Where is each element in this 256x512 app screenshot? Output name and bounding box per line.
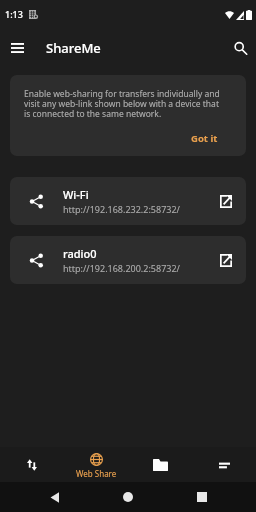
button[interactable]: Web Share — [64, 447, 128, 482]
button[interactable]: Back — [38, 482, 70, 512]
button[interactable]: Open link in browser — [205, 236, 246, 284]
staticText: http://192.168.200.2:58732/ — [63, 262, 180, 274]
button[interactable]: Send and receive — [0, 447, 64, 482]
button[interactable]: Files — [128, 447, 192, 482]
button[interactable]: More options — [192, 447, 256, 482]
staticText: Wi-Fi — [63, 187, 89, 202]
staticText: http://192.168.232.2:58732/ — [63, 203, 180, 215]
button[interactable]: radio0 — [10, 236, 246, 284]
staticText: ShareMe — [46, 39, 101, 57]
staticText: Enable web-sharing for transfers individ… — [24, 88, 224, 120]
staticText: Got it — [191, 132, 218, 145]
staticText: radio0 — [63, 246, 97, 261]
staticText: 1:13 — [5, 8, 23, 20]
button[interactable]: Wi-Fi — [10, 177, 246, 225]
button[interactable]: Open link in browser — [205, 177, 246, 225]
button[interactable]: Recent apps — [186, 482, 218, 512]
button[interactable]: Search — [224, 32, 256, 64]
button[interactable]: Home — [112, 482, 144, 512]
staticText: Web Share — [76, 468, 117, 479]
button[interactable]: Got it — [191, 132, 246, 156]
button[interactable]: Navigation menu — [1, 32, 33, 64]
